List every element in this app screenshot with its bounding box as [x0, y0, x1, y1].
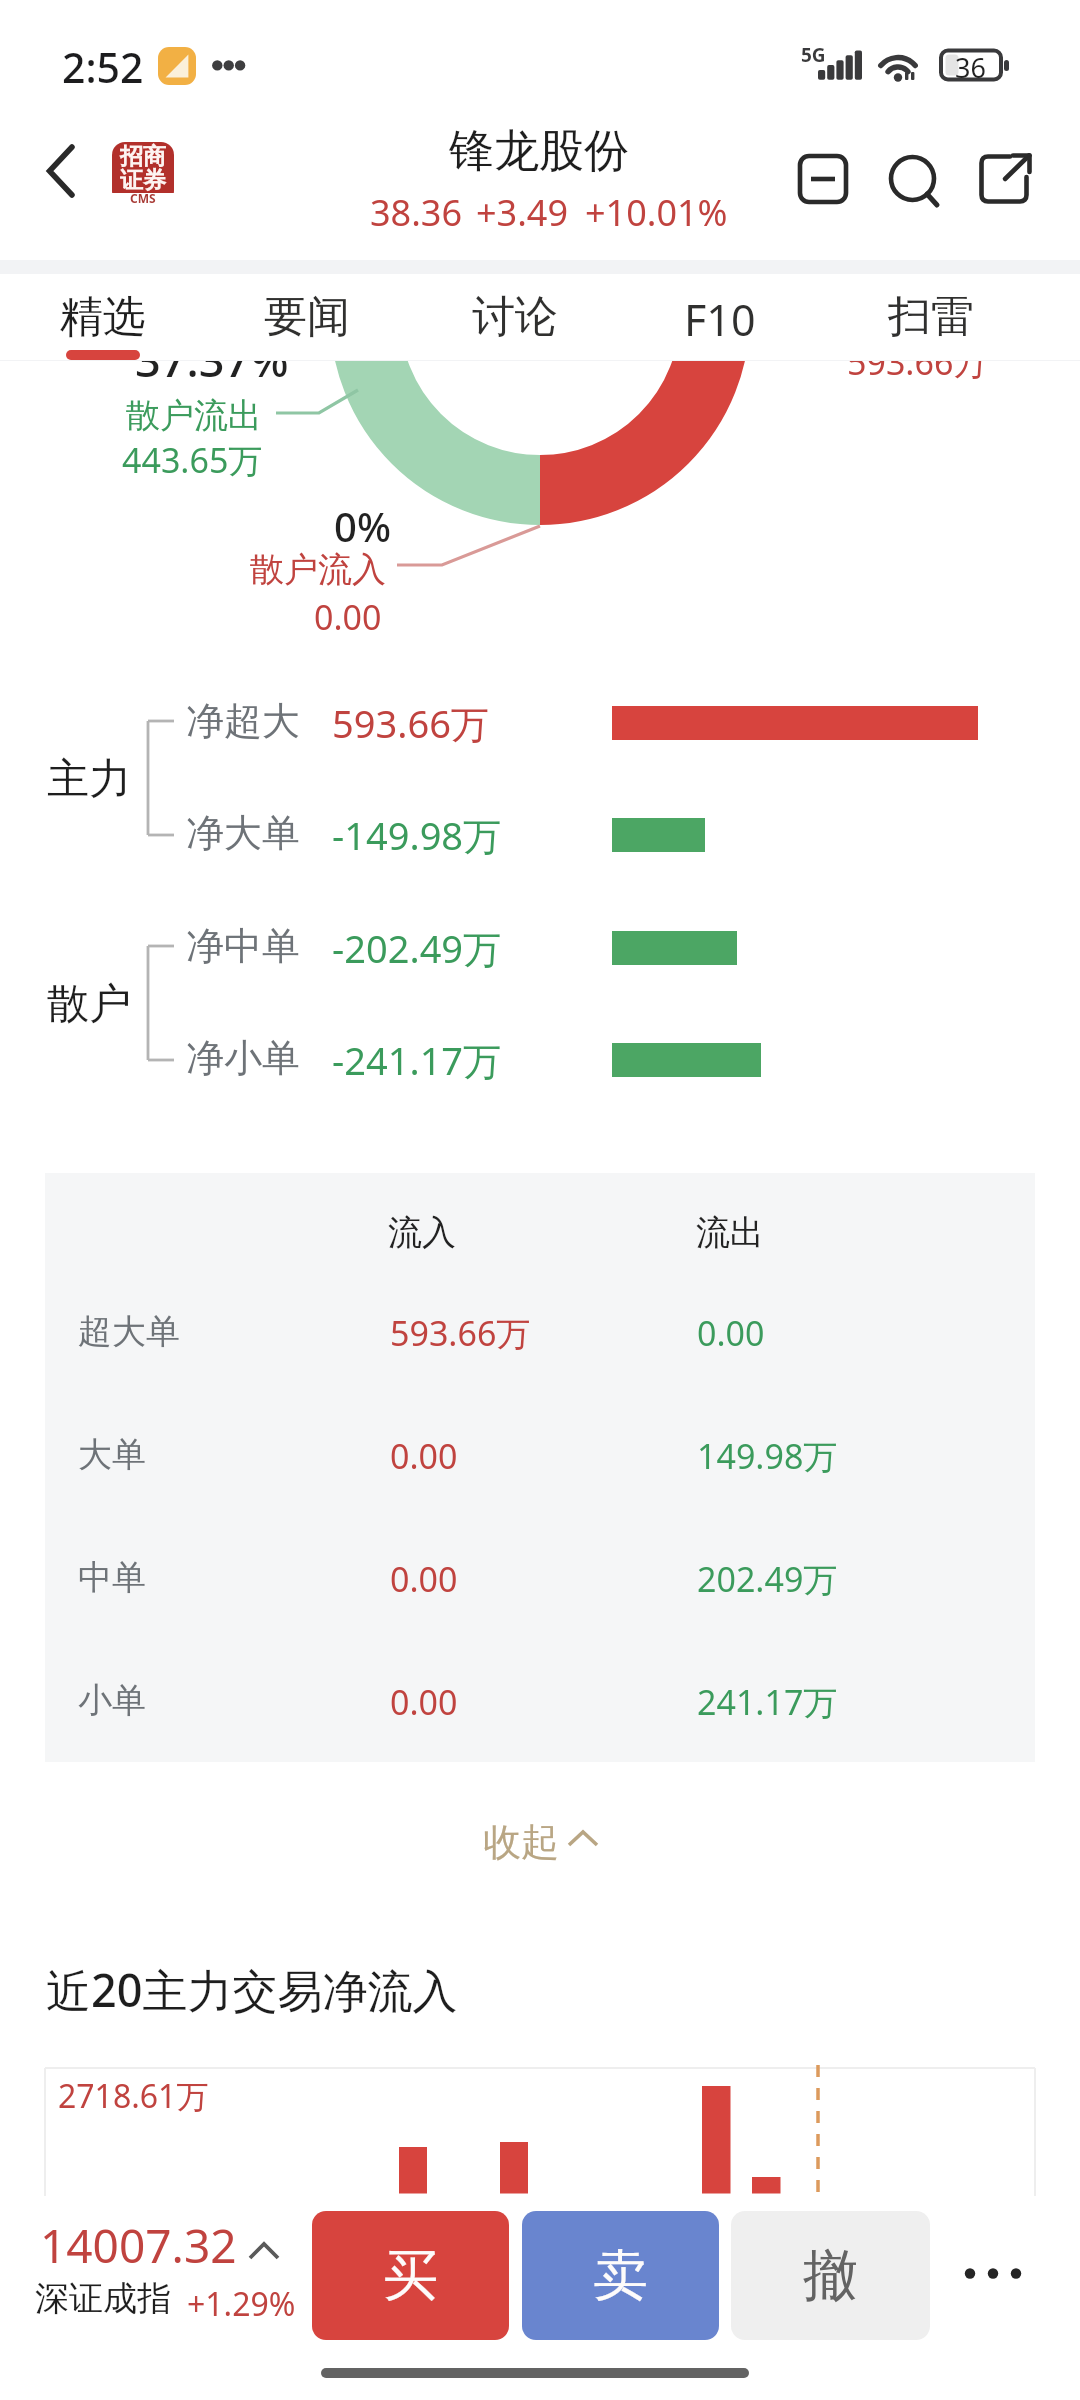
staticText: 593.66万 — [332, 697, 489, 749]
button[interactable]: 要闻 — [264, 290, 350, 352]
staticText: 精选 — [60, 290, 146, 344]
button[interactable]: 收起 — [470, 1812, 620, 1870]
staticText: 5G — [801, 42, 826, 68]
button[interactable]: 讨论 — [472, 290, 558, 352]
staticText: 中单 — [78, 1556, 146, 1599]
staticText: 14007.32 — [40, 2214, 237, 2277]
staticText: +1.29% — [187, 2282, 296, 2326]
button[interactable]: Back — [18, 132, 96, 210]
button[interactable]: 扫雷 — [888, 290, 974, 352]
staticText: 37.37% — [135, 361, 289, 390]
button[interactable]: Search — [877, 144, 949, 216]
staticText: 36 — [955, 49, 986, 86]
button[interactable]: 买 — [312, 2211, 509, 2340]
staticText: 2:52 — [62, 39, 144, 95]
staticText: 证券 — [120, 166, 166, 195]
staticText: +3.49 — [476, 188, 569, 237]
staticText: 深证成指 — [35, 2277, 171, 2320]
staticText: 买 — [383, 2241, 438, 2310]
staticText: CMS — [130, 190, 156, 204]
staticText: 超大单 — [78, 1310, 180, 1353]
staticText: 593.66万 — [390, 1310, 531, 1356]
button[interactable]: Share — [969, 144, 1041, 216]
staticText: -241.17万 — [332, 1034, 502, 1086]
staticText: 大单 — [78, 1433, 146, 1476]
staticText: 0.00 — [314, 594, 382, 640]
staticText: 散户流出 — [126, 394, 262, 437]
staticText: 讨论 — [472, 290, 558, 344]
staticText: -149.98万 — [332, 809, 502, 861]
staticText: 202.49万 — [697, 1556, 838, 1602]
button[interactable]: More — [945, 2238, 1040, 2310]
staticText: 593.66万 — [847, 361, 988, 385]
staticText: 散户 — [47, 978, 131, 1031]
button[interactable]: 精选 — [60, 290, 146, 352]
staticText: 要闻 — [264, 290, 350, 344]
staticText: 收起 — [483, 1818, 559, 1866]
staticText: +10.01% — [585, 188, 728, 237]
button[interactable]: 撤 — [731, 2211, 930, 2340]
button[interactable]: Minimize — [788, 144, 860, 216]
staticText: 小单 — [78, 1679, 146, 1722]
staticText: 241.17万 — [697, 1679, 838, 1725]
button[interactable]: CMS logo — [112, 142, 174, 204]
staticText: 净小单 — [186, 1034, 300, 1082]
staticText: 招商 — [120, 142, 166, 171]
staticText: 0% — [334, 499, 391, 553]
staticText: 近20主力交易净流入 — [46, 1959, 458, 2020]
staticText: 149.98万 — [697, 1433, 838, 1479]
staticText: 0.00 — [390, 1556, 458, 1602]
button[interactable]: 14007.32 — [28, 2218, 308, 2320]
staticText: 0.00 — [390, 1679, 458, 1725]
staticText: 2718.61万 — [58, 2074, 209, 2118]
staticText: -202.49万 — [332, 922, 502, 974]
staticText: 38.36 — [370, 188, 463, 237]
staticText: 净大单 — [186, 809, 300, 857]
staticText: 流入 — [388, 1211, 456, 1254]
button[interactable]: 卖 — [522, 2211, 719, 2340]
staticText: 扫雷 — [888, 290, 974, 344]
staticText: 443.65万 — [122, 437, 263, 483]
staticText: 卖 — [593, 2241, 648, 2310]
staticText: 净超大 — [186, 697, 300, 745]
button[interactable]: F10 — [684, 290, 756, 352]
staticText: 0.00 — [390, 1433, 458, 1479]
staticText: 撤 — [803, 2241, 858, 2310]
staticText: 主力 — [47, 753, 131, 806]
staticText: 流出 — [696, 1211, 764, 1254]
staticText: 散户流入 — [250, 548, 386, 591]
staticText: F10 — [684, 290, 756, 349]
staticText: 锋龙股份 — [449, 123, 629, 180]
staticText: 净中单 — [186, 922, 300, 970]
staticText: 0.00 — [697, 1310, 765, 1356]
